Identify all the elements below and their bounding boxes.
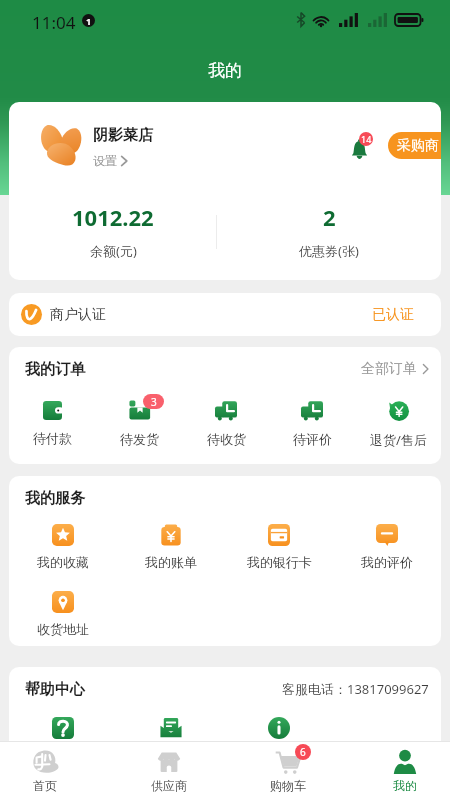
staticText: 我的银行卡 (247, 554, 312, 570)
button[interactable]: 意见反馈 (117, 706, 225, 773)
staticText: 待发货 (120, 431, 159, 447)
button[interactable]: 待收货 (183, 386, 269, 464)
button[interactable]: 3 (96, 386, 183, 464)
button[interactable]: 待评价 (269, 386, 355, 464)
staticText: 商户认证 (50, 306, 106, 324)
button[interactable]: 采购商 (388, 132, 441, 159)
button[interactable]: 我的收藏 (9, 515, 117, 582)
staticText: 我的收藏 (37, 554, 89, 570)
staticText: 待收货 (207, 431, 246, 447)
staticText: 已认证 (372, 306, 414, 324)
staticText: 购物车 (270, 778, 306, 793)
button[interactable]: 待付款 (9, 386, 96, 464)
button[interactable]: 退货/售后 (355, 386, 441, 464)
button[interactable]: Notifications (349, 130, 381, 162)
button[interactable]: 全部订单 (361, 360, 429, 378)
button[interactable]: 2 (217, 202, 441, 260)
staticText: 1012.22 (72, 202, 154, 232)
button[interactable]: 我的 (365, 742, 445, 800)
staticText: 14 (361, 133, 372, 145)
staticText: 3 (151, 395, 157, 409)
staticText: 意见反馈 (145, 747, 197, 763)
staticText: 采购商 (397, 137, 439, 155)
staticText: 6 (300, 745, 306, 759)
button[interactable]: 我的评价 (333, 515, 441, 582)
staticText: 首页 (33, 778, 57, 793)
staticText: 收货地址 (37, 621, 89, 637)
button[interactable]: 设置 (93, 153, 128, 168)
staticText: 2 (323, 202, 336, 232)
button[interactable]: 关于我们 (225, 706, 333, 773)
staticText: 全部订单 (361, 360, 417, 378)
button[interactable]: 首页 (5, 742, 85, 800)
button[interactable]: 常见问题 (9, 706, 117, 773)
button[interactable]: 1012.22 (9, 202, 217, 260)
button[interactable]: 供应商 (129, 742, 209, 800)
button[interactable]: 我的银行卡 (225, 515, 333, 582)
staticText: 1 (86, 15, 92, 27)
staticText: 客服电话：13817099627 (282, 680, 429, 698)
button[interactable]: 我的账单 (117, 515, 225, 582)
staticText: 供应商 (151, 778, 187, 793)
staticText: 设置 (93, 153, 117, 168)
button[interactable]: 商户认证 (9, 293, 441, 336)
staticText: 11:04 (32, 11, 76, 34)
button[interactable]: 收货地址 (9, 582, 117, 646)
staticText: 帮助中心 (25, 680, 85, 699)
staticText: 我的账单 (145, 554, 197, 570)
staticText: 我的 (208, 60, 242, 81)
staticText: 退货/售后 (370, 431, 427, 449)
staticText: 待付款 (33, 430, 72, 446)
staticText: 我的评价 (361, 554, 413, 570)
staticText: 我的 (393, 778, 417, 793)
staticText: 关于我们 (253, 747, 305, 763)
staticText: 阴影菜店 (93, 126, 153, 145)
button[interactable]: 6 (248, 742, 328, 800)
staticText: 我的订单 (25, 360, 85, 379)
staticText: 余额(元) (90, 242, 137, 260)
staticText: 优惠券(张) (299, 242, 359, 260)
staticText: 待评价 (293, 431, 332, 447)
staticText: 我的服务 (25, 489, 85, 508)
staticText: 常见问题 (37, 747, 89, 763)
